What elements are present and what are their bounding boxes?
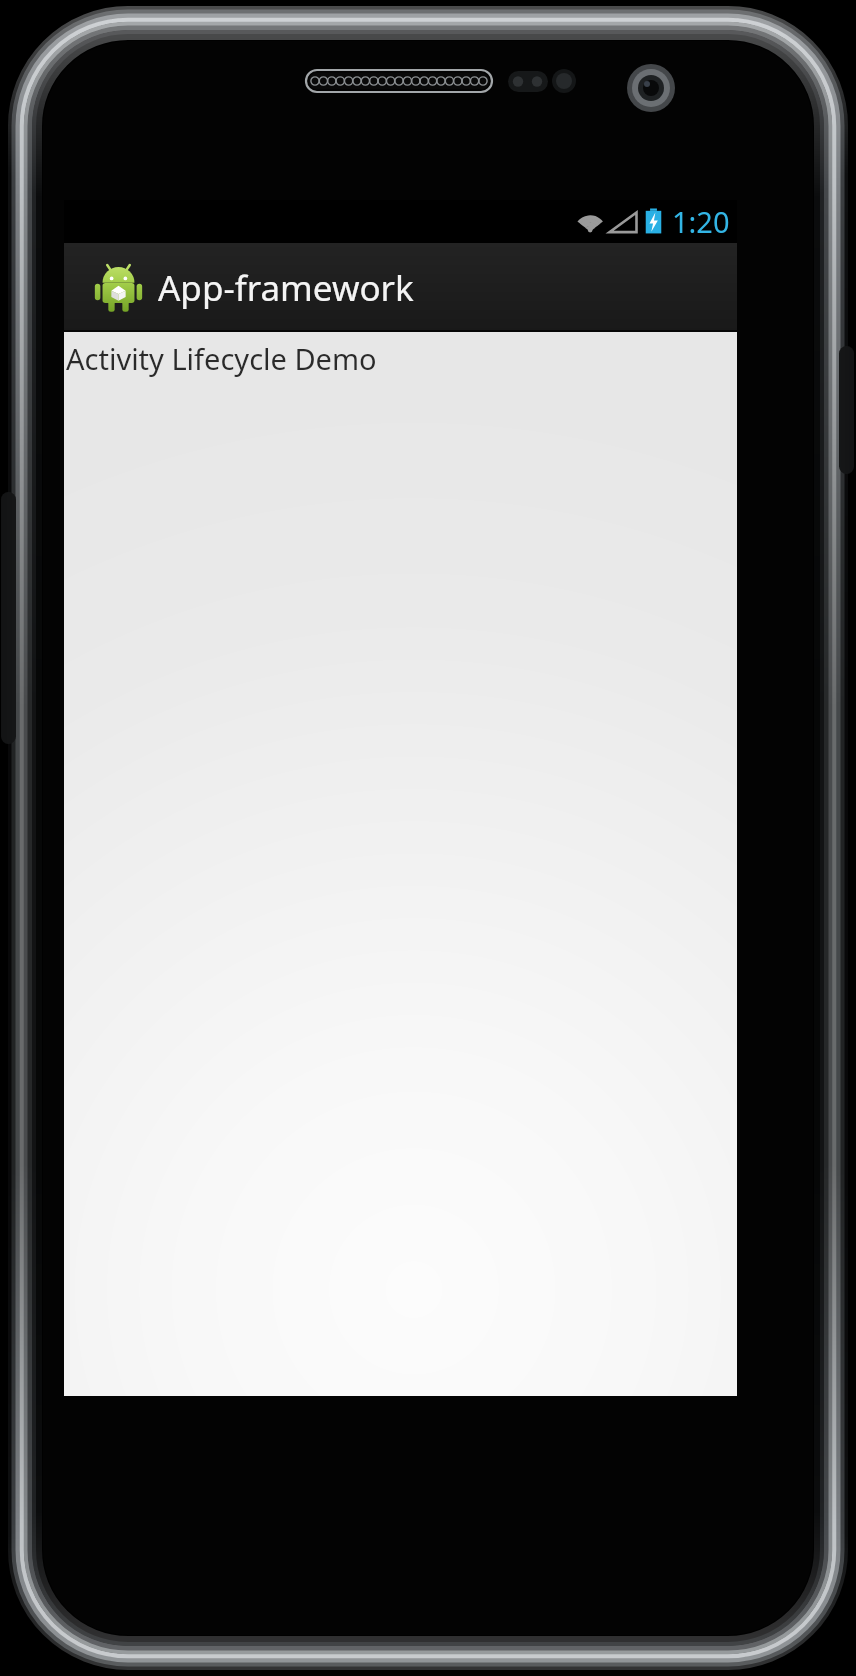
staticText: 1:20 — [672, 202, 730, 241]
other: App icon — [91, 260, 146, 315]
other: Battery charging — [643, 206, 664, 237]
other: Signal — [608, 208, 638, 236]
other: Wi-Fi — [573, 208, 606, 236]
staticText: App-framework — [158, 264, 414, 312]
staticText: Activity Lifecycle Demo — [66, 339, 377, 378]
button[interactable]: App icon — [91, 243, 414, 332]
